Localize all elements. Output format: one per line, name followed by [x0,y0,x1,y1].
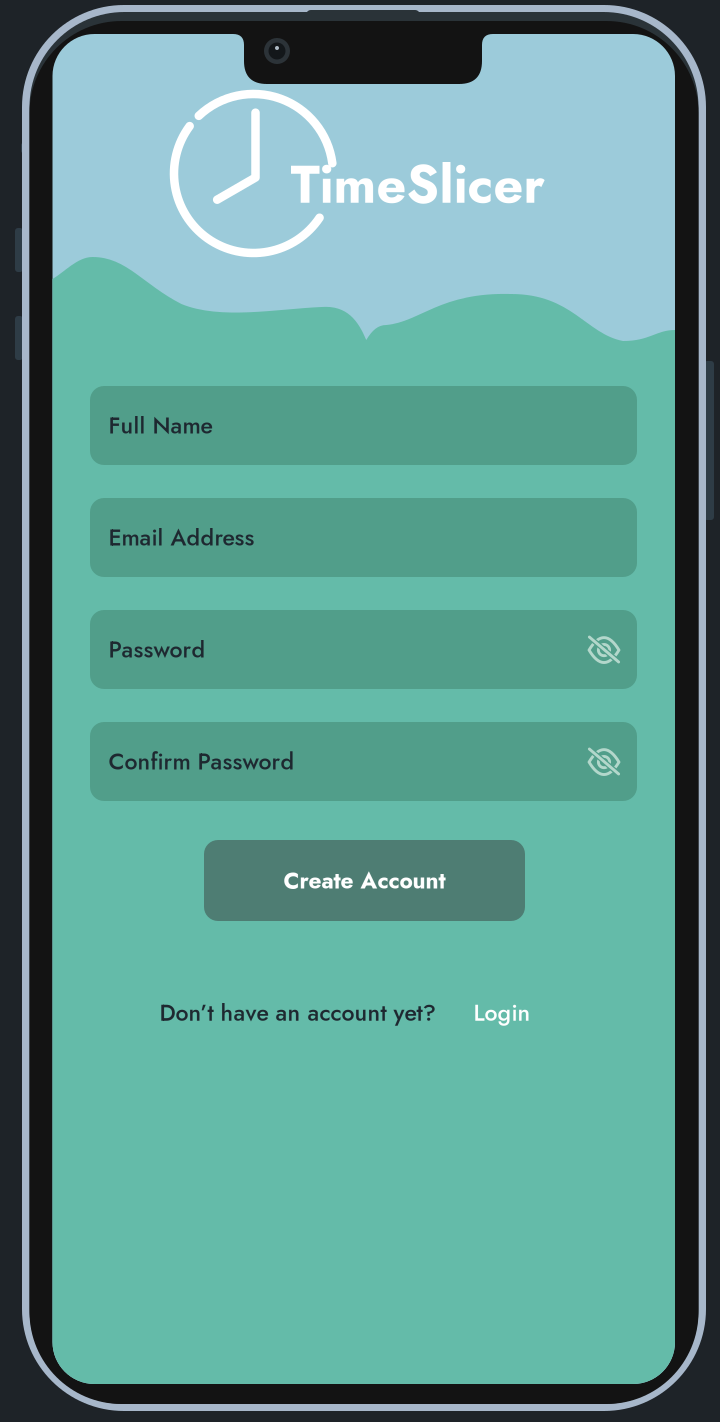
staticText: Password [108,633,205,666]
button[interactable]: Login [473,996,530,1029]
staticText: Email Address [108,521,254,554]
staticText: TimeSlicer [290,147,544,222]
button[interactable]: Show Confirm Password [579,722,629,801]
button[interactable]: Show Password [579,610,629,689]
staticText: Login [473,996,530,1029]
button[interactable]: Create Account [204,840,525,921]
staticText: Don’t have an account yet? [159,996,435,1029]
staticText: Full Name [108,409,212,442]
staticText: Create Account [283,864,445,897]
staticText: Confirm Password [108,745,294,778]
